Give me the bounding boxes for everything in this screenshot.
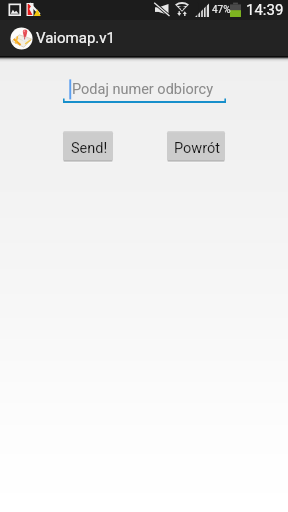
staticText: Powrót [174,140,221,157]
other: App icon [10,27,33,50]
staticText: Send! [71,140,108,157]
staticText: 14:39 [246,1,284,19]
button[interactable]: Podaj numer odbiorcy [63,76,226,103]
staticText: Podaj numer odbiorcy [72,81,213,98]
staticText: 47% [212,4,231,16]
staticText: Vaiomap.v1 [36,29,115,47]
button[interactable]: Send! [63,131,113,163]
button[interactable]: Powrót [167,131,225,163]
